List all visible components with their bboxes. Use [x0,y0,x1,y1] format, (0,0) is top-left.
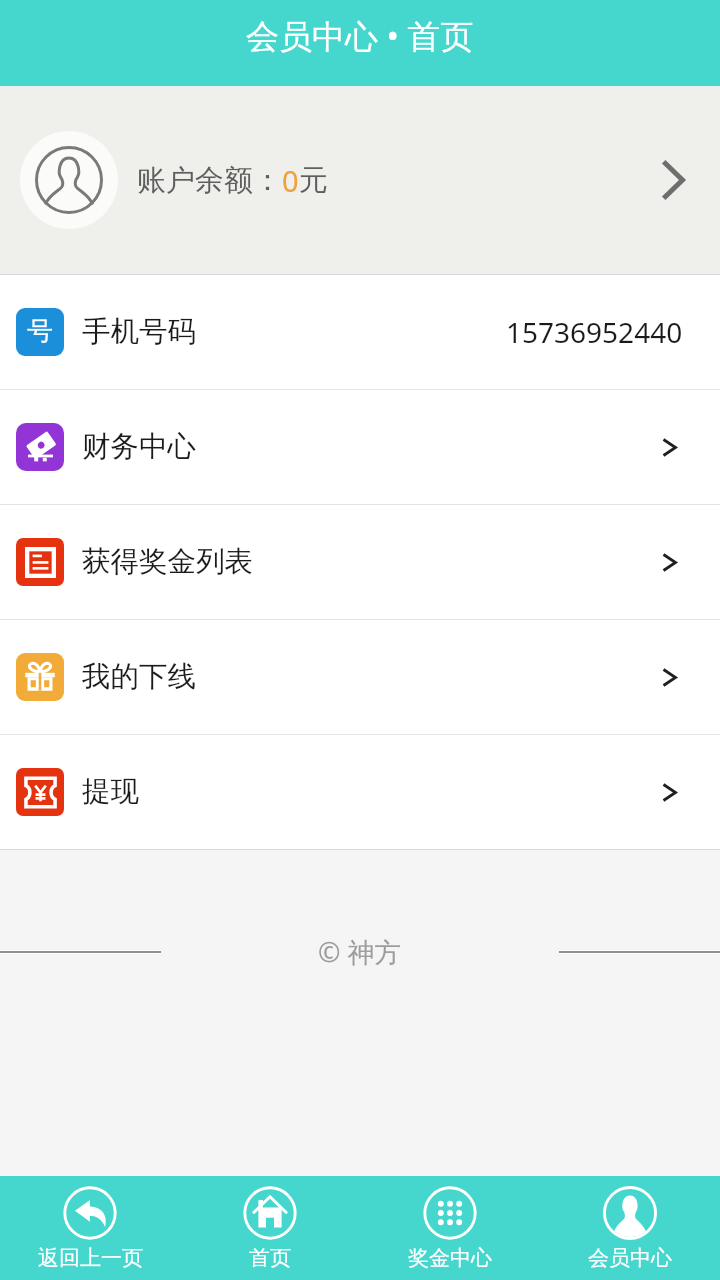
staticText: 账户余额： [137,162,282,199]
button[interactable]: 账户余额： [0,86,720,274]
other: 会员中心 [603,1186,657,1240]
staticText: 元 [299,162,328,199]
staticText: © 神方 [318,933,402,970]
staticText: 奖金中心 [408,1245,492,1271]
button[interactable]: 首页 [180,1180,360,1277]
other: 返回上一页 [63,1186,117,1240]
button[interactable]: 会员中心 [540,1180,720,1277]
other: 首页 [243,1186,297,1240]
staticText: 财务中心 [82,429,196,465]
staticText: 会员中心 • 首页 [246,13,474,58]
button[interactable]: 获得奖金列表 [0,505,720,619]
button[interactable]: 奖金中心 [360,1180,540,1277]
staticText: 获得奖金列表 [82,544,253,580]
button[interactable]: 提现 [0,735,720,849]
button[interactable]: 我的下线 [0,620,720,734]
staticText: 0 [282,161,299,200]
staticText: 15736952440 [506,313,683,351]
button[interactable]: 号 [0,275,720,389]
staticText: 会员中心 [588,1245,672,1271]
staticText: 号 [27,315,53,348]
button[interactable]: 财务中心 [0,390,720,504]
staticText: 提现 [82,774,139,810]
other: 奖金中心 [423,1186,477,1240]
staticText: 我的下线 [82,659,196,695]
staticText: 首页 [249,1245,291,1271]
staticText: 手机号码 [82,314,196,350]
button[interactable]: 返回上一页 [0,1180,180,1277]
staticText: 返回上一页 [38,1245,143,1271]
